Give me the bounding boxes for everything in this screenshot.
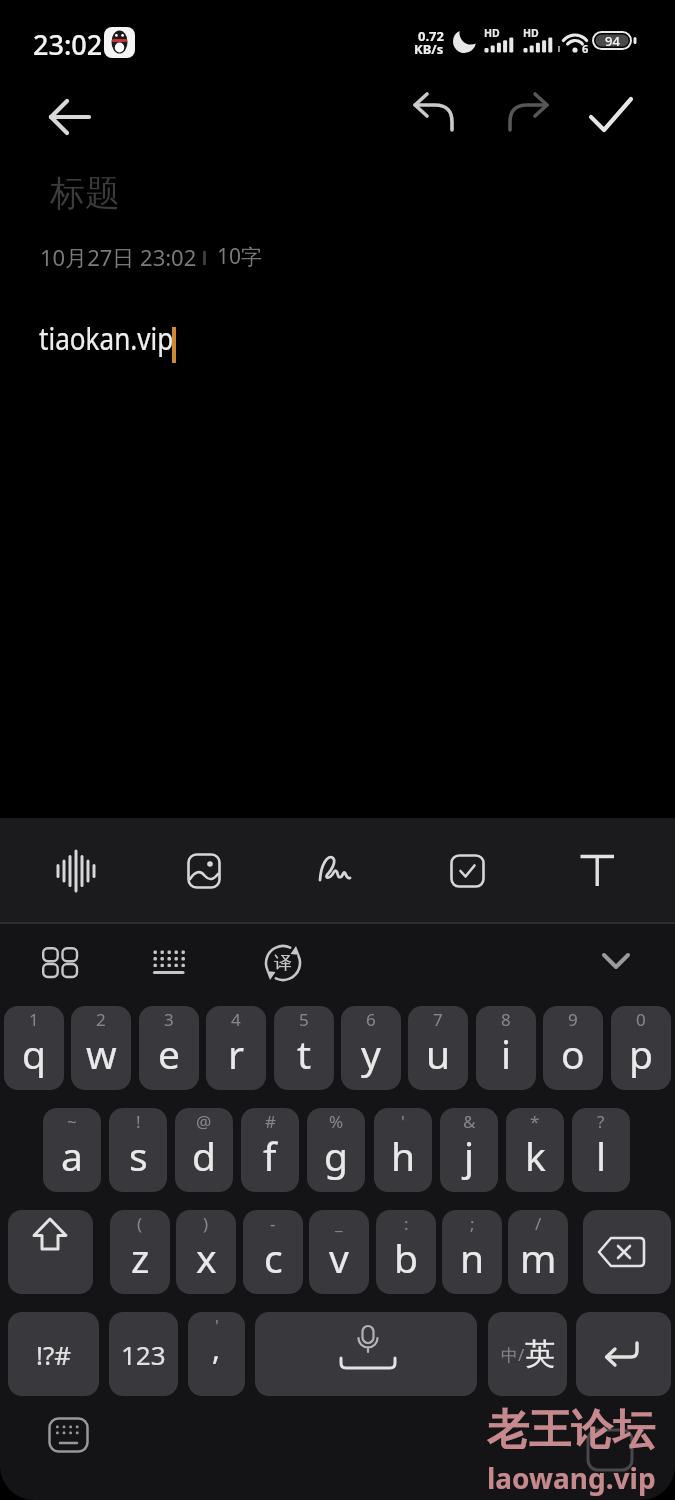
button[interactable]: _ bbox=[309, 1210, 369, 1294]
staticText: f bbox=[263, 1129, 277, 1182]
staticText: w bbox=[86, 1027, 117, 1080]
staticText: ) bbox=[203, 1212, 209, 1235]
staticText: 10字 bbox=[217, 242, 263, 271]
button[interactable]: / bbox=[508, 1210, 568, 1294]
staticText: ' bbox=[215, 1314, 219, 1337]
button[interactable] bbox=[187, 853, 223, 889]
button[interactable] bbox=[579, 853, 617, 889]
staticText: * bbox=[530, 1110, 540, 1133]
staticText: 2 bbox=[96, 1008, 106, 1031]
button[interactable] bbox=[42, 947, 79, 979]
button[interactable]: @ bbox=[175, 1108, 233, 1192]
staticText: v bbox=[329, 1231, 349, 1284]
staticText: 94 bbox=[605, 32, 620, 50]
staticText: b bbox=[394, 1231, 418, 1284]
button[interactable]: ( bbox=[110, 1210, 170, 1294]
button[interactable]: 1 bbox=[4, 1006, 64, 1090]
staticText: i bbox=[501, 1027, 512, 1080]
staticText: ? bbox=[597, 1110, 605, 1133]
button[interactable]: 中/ bbox=[488, 1312, 567, 1396]
staticText: 123 bbox=[121, 1337, 166, 1372]
button[interactable] bbox=[42, 94, 94, 140]
staticText: g bbox=[324, 1129, 348, 1182]
staticText: 8 bbox=[501, 1008, 511, 1031]
staticText: / bbox=[535, 1212, 542, 1235]
staticText: 老王论坛 bbox=[487, 1404, 655, 1457]
staticText: ; bbox=[470, 1212, 475, 1235]
staticText: l bbox=[596, 1129, 607, 1182]
button[interactable] bbox=[408, 92, 460, 140]
staticText: & bbox=[463, 1110, 476, 1133]
button[interactable] bbox=[583, 1210, 671, 1294]
staticText: _ bbox=[335, 1212, 343, 1235]
staticText: 0.72 bbox=[418, 27, 444, 45]
staticText: m bbox=[520, 1231, 557, 1284]
staticText: ( bbox=[137, 1212, 143, 1235]
staticText: q bbox=[22, 1027, 46, 1080]
button[interactable]: !?# bbox=[8, 1312, 99, 1396]
button[interactable] bbox=[599, 948, 633, 978]
button[interactable]: 5 bbox=[274, 1006, 334, 1090]
button[interactable] bbox=[48, 1417, 90, 1455]
staticText: 7 bbox=[433, 1008, 443, 1031]
button[interactable] bbox=[450, 854, 486, 889]
button[interactable]: ~ bbox=[43, 1108, 101, 1192]
staticText: k bbox=[525, 1129, 546, 1182]
staticText: KB/s bbox=[414, 40, 444, 58]
button[interactable]: ? bbox=[572, 1108, 630, 1192]
button[interactable]: * bbox=[506, 1108, 564, 1192]
staticText: - bbox=[270, 1212, 276, 1235]
button[interactable]: 9 bbox=[543, 1006, 603, 1090]
staticText: a bbox=[61, 1129, 83, 1182]
staticText: 0 bbox=[636, 1008, 646, 1031]
button[interactable]: ) bbox=[176, 1210, 236, 1294]
staticText: n bbox=[460, 1231, 485, 1284]
staticText: z bbox=[131, 1231, 150, 1284]
staticText: @ bbox=[196, 1110, 212, 1133]
button[interactable]: ! bbox=[109, 1108, 167, 1192]
staticText: 英 bbox=[525, 1335, 555, 1373]
button[interactable]: % bbox=[307, 1108, 365, 1192]
button[interactable]: 2 bbox=[71, 1006, 131, 1090]
button[interactable]: 6 bbox=[341, 1006, 401, 1090]
staticText: ~ bbox=[67, 1110, 77, 1133]
button[interactable]: & bbox=[440, 1108, 498, 1192]
staticText: % bbox=[329, 1110, 344, 1133]
button[interactable]: 7 bbox=[408, 1006, 468, 1090]
staticText: 23:02 bbox=[33, 26, 103, 63]
button[interactable]: ; bbox=[442, 1210, 502, 1294]
staticText: HD bbox=[523, 26, 539, 40]
staticText: t bbox=[297, 1027, 312, 1080]
staticText: h bbox=[391, 1129, 416, 1182]
staticText: ! bbox=[136, 1110, 141, 1133]
button[interactable]: 123 bbox=[109, 1312, 178, 1396]
button[interactable] bbox=[151, 949, 187, 977]
staticText: s bbox=[129, 1129, 148, 1182]
staticText: o bbox=[561, 1027, 585, 1080]
button[interactable] bbox=[46, 841, 106, 901]
button[interactable]: - bbox=[243, 1210, 303, 1294]
button[interactable] bbox=[8, 1210, 93, 1294]
button[interactable] bbox=[255, 1312, 477, 1396]
button[interactable]: 3 bbox=[139, 1006, 199, 1090]
staticText: p bbox=[629, 1027, 653, 1080]
button[interactable]: ' bbox=[374, 1108, 432, 1192]
button[interactable]: 4 bbox=[206, 1006, 266, 1090]
staticText: x bbox=[196, 1231, 217, 1284]
button[interactable]: : bbox=[376, 1210, 436, 1294]
staticText: d bbox=[192, 1129, 216, 1182]
button[interactable]: # bbox=[241, 1108, 299, 1192]
button[interactable] bbox=[318, 852, 368, 892]
button[interactable]: ' bbox=[188, 1312, 245, 1396]
staticText: ' bbox=[401, 1110, 405, 1133]
staticText: 4 bbox=[231, 1008, 241, 1031]
button[interactable]: 0 bbox=[611, 1006, 671, 1090]
staticText: r bbox=[228, 1027, 245, 1080]
button[interactable] bbox=[502, 92, 554, 140]
button[interactable] bbox=[584, 90, 638, 140]
button[interactable]: 8 bbox=[476, 1006, 536, 1090]
staticText: # bbox=[265, 1110, 276, 1133]
button[interactable]: 译 bbox=[262, 942, 304, 984]
staticText: , bbox=[212, 1328, 221, 1369]
button[interactable] bbox=[576, 1312, 671, 1396]
